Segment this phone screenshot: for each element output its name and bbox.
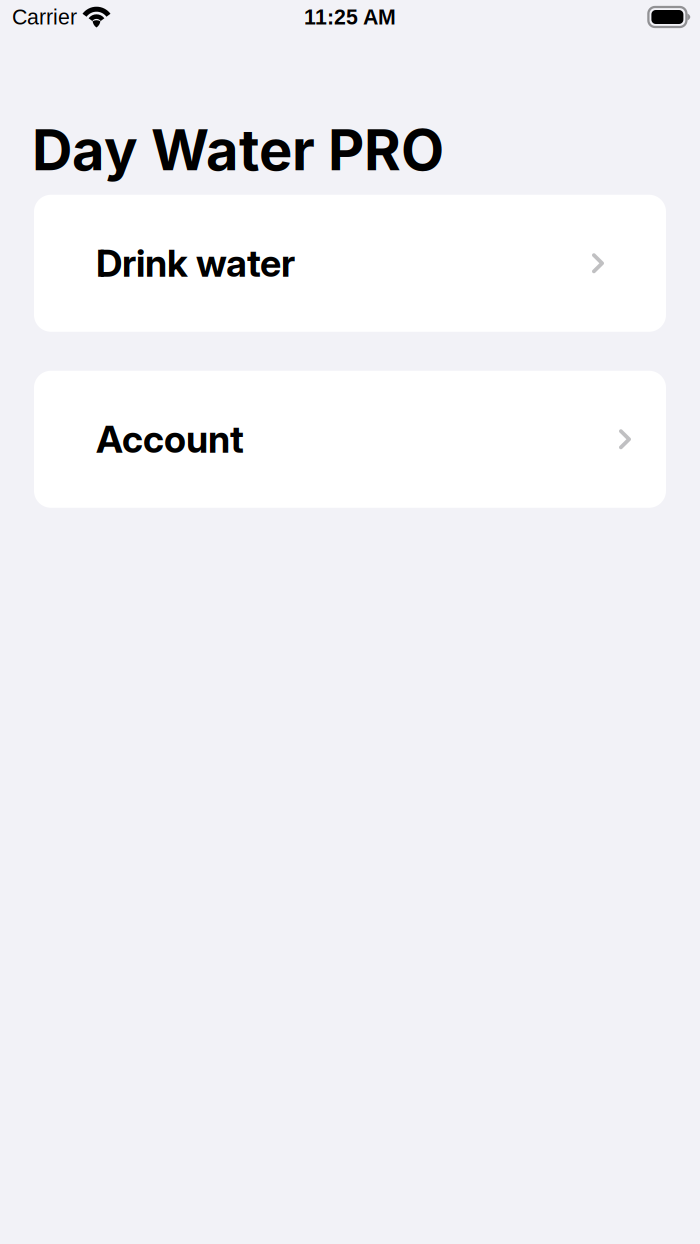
staticText: Carrier (12, 5, 77, 29)
staticText: Account (96, 417, 244, 462)
button[interactable]: Account (34, 371, 666, 508)
button[interactable]: Drink water (34, 195, 666, 332)
staticText: Day Water PRO (32, 116, 444, 184)
staticText: 11:25 AM (304, 5, 396, 29)
staticText: Drink water (96, 241, 295, 286)
